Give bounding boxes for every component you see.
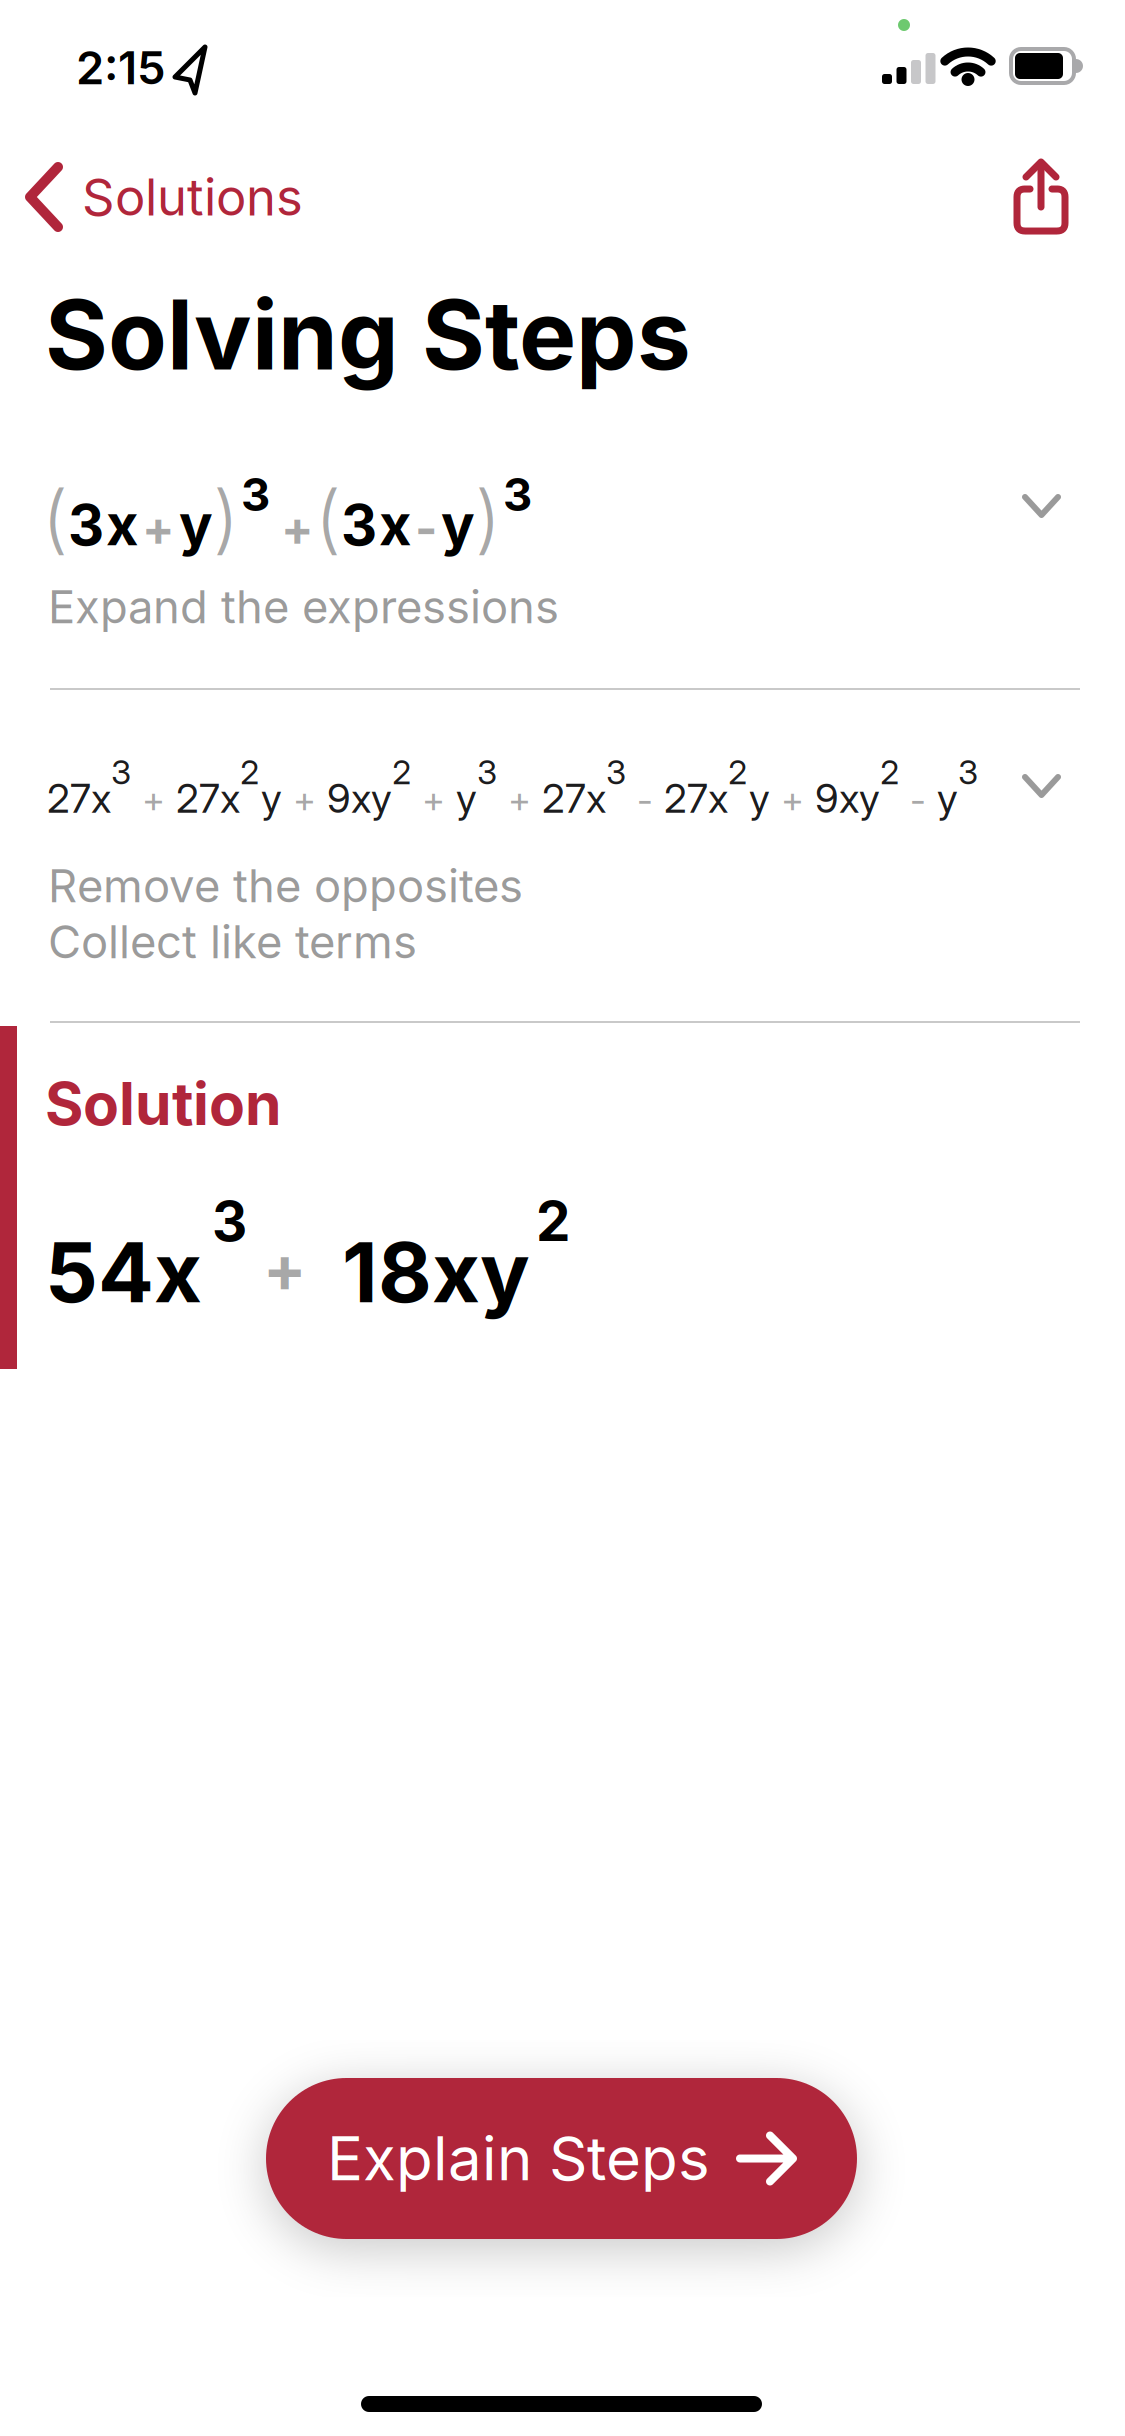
button[interactable]: Explain Steps xyxy=(266,2078,857,2239)
button[interactable]: Step: expanded expression xyxy=(0,737,1125,827)
staticText: Remove the opposites xyxy=(48,859,523,912)
staticText: - xyxy=(415,500,437,556)
staticText: 27x xyxy=(176,775,240,822)
button[interactable]: Step: (3x+y)^3 + (3x-y)^3 xyxy=(0,452,1125,562)
staticText: + xyxy=(422,778,445,821)
staticText: Explain Steps xyxy=(327,2123,710,2194)
staticText: y xyxy=(441,492,475,558)
staticText: ( xyxy=(315,474,341,562)
staticText: + xyxy=(293,778,316,821)
staticText: 9xy xyxy=(815,775,880,822)
staticText: Solution xyxy=(45,1069,282,1138)
staticText: 3 xyxy=(477,752,497,792)
staticText: + xyxy=(263,1231,306,1306)
staticText: 2 xyxy=(392,752,411,792)
staticText: 3 xyxy=(68,492,104,558)
staticText: 2 xyxy=(728,752,747,792)
staticText: 27x xyxy=(47,775,111,822)
button[interactable]: Share xyxy=(1008,157,1072,235)
staticText: + xyxy=(508,778,531,821)
staticText: + xyxy=(781,778,804,821)
staticText: x xyxy=(379,492,411,558)
staticText: 3 xyxy=(958,752,978,792)
staticText: Expand the expressions xyxy=(48,580,559,633)
staticText: 54x xyxy=(45,1223,202,1321)
staticText: + xyxy=(142,500,175,556)
staticText: y xyxy=(749,775,770,822)
staticText: 3 xyxy=(241,468,270,521)
staticText: Solutions xyxy=(82,167,303,227)
staticText: 3 xyxy=(341,492,377,558)
staticText: 2 xyxy=(880,752,899,792)
staticText: y xyxy=(456,775,477,822)
staticText: - xyxy=(910,778,926,821)
staticText: 3 xyxy=(212,1189,247,1253)
staticText: 3 xyxy=(503,468,532,521)
staticText: ( xyxy=(42,474,68,562)
button[interactable]: Back to Solutions xyxy=(28,159,303,235)
staticText: x xyxy=(106,492,138,558)
staticText: 2 xyxy=(240,752,259,792)
staticText: Solving Steps xyxy=(45,278,691,391)
staticText: + xyxy=(142,778,165,821)
staticText: 27x xyxy=(542,775,606,822)
staticText: 9xy xyxy=(327,775,392,822)
staticText: 2 xyxy=(536,1189,570,1253)
staticText: 27x xyxy=(664,775,728,822)
staticText: 3 xyxy=(606,752,626,792)
staticText: y xyxy=(179,492,213,558)
staticText: Collect like terms xyxy=(48,915,417,968)
staticText: - xyxy=(637,778,653,821)
staticText: 3 xyxy=(111,752,131,792)
staticText: ) xyxy=(475,474,501,562)
staticText: ) xyxy=(213,474,239,562)
staticText: y xyxy=(937,775,958,822)
staticText: y xyxy=(261,775,282,822)
staticText: + xyxy=(281,500,314,556)
staticText: 18xy xyxy=(342,1223,530,1321)
staticText: 2:15 xyxy=(76,41,166,94)
